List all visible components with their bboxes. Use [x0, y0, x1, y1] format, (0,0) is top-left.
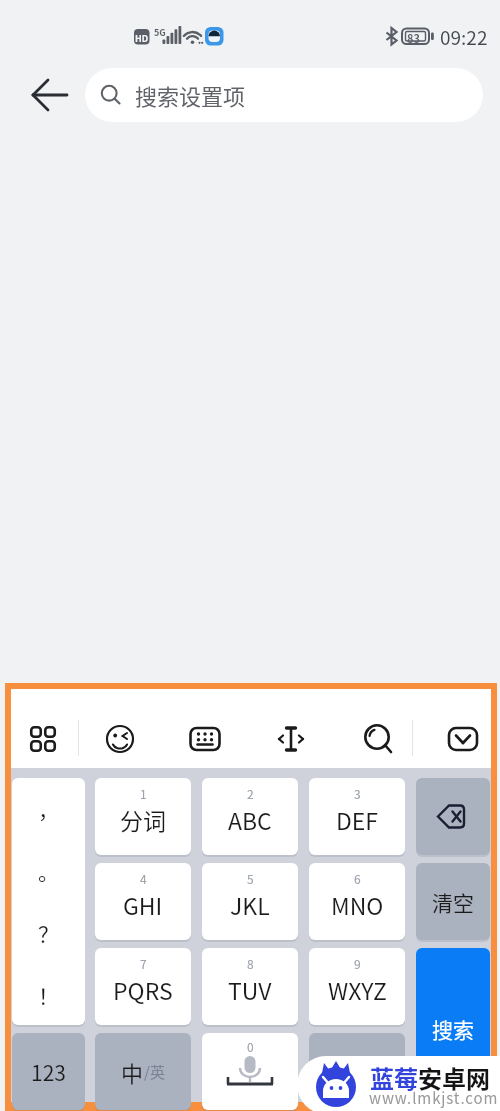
button[interactable]: 5 [202, 863, 298, 940]
staticText: 蓝莓 [370, 1060, 418, 1095]
staticText: 清空 [432, 887, 474, 917]
staticText: www.lmkjst.com [369, 1087, 499, 1109]
button[interactable]: Keyboard layouts [17, 713, 69, 765]
button[interactable]: Backspace [416, 778, 490, 855]
button[interactable]: 3 [309, 778, 405, 855]
button[interactable]: Back [26, 71, 74, 119]
staticText: 中 [121, 1056, 144, 1088]
button[interactable]: Punctuation [12, 778, 85, 1025]
button[interactable]: Space [202, 1033, 298, 1110]
staticText: DEF [336, 803, 379, 836]
button[interactable]: 8 [202, 948, 298, 1025]
staticText: 5 [247, 870, 254, 887]
staticText: 。 [38, 856, 59, 886]
staticText: 09:22 [440, 23, 488, 51]
staticText: 0 [247, 1038, 254, 1055]
staticText: 9 [354, 955, 361, 972]
staticText: 7 [140, 955, 147, 972]
button[interactable]: 中 [95, 1033, 191, 1110]
button[interactable]: 123 [12, 1033, 85, 1110]
staticText: 83 [407, 30, 420, 46]
button[interactable]: Numeric keypad [179, 713, 231, 765]
staticText: GHI [123, 888, 163, 921]
staticText: ， [38, 794, 59, 824]
staticText: 5G [154, 26, 166, 39]
button[interactable]: Hide keyboard [437, 713, 489, 765]
staticText: MNO [331, 888, 384, 921]
staticText: /英 [144, 1061, 165, 1083]
button[interactable]: Search [352, 713, 404, 765]
staticText: WXYZ [328, 973, 387, 1006]
button[interactable]: 清空 [416, 863, 490, 940]
button[interactable]: 搜索 [416, 948, 490, 1110]
button[interactable]: 7 [95, 948, 191, 1025]
staticText: PQRS [113, 973, 173, 1006]
button[interactable]: 2 [202, 778, 298, 855]
button[interactable]: 4 [95, 863, 191, 940]
staticText: ABC [228, 803, 272, 836]
staticText: ？ [38, 918, 59, 948]
staticText: 搜索设置项 [135, 79, 246, 111]
button[interactable]: Emoji [94, 713, 146, 765]
staticText: TUV [228, 973, 272, 1006]
staticText: 搜索 [432, 1014, 474, 1044]
staticText: 4 [140, 870, 147, 887]
staticText: 8 [247, 955, 254, 972]
button[interactable]: 9 [309, 948, 405, 1025]
staticText: 2 [247, 785, 254, 802]
staticText: 123 [31, 1057, 66, 1087]
staticText: 6 [354, 870, 361, 887]
staticText: ！ [38, 980, 59, 1010]
staticText: 3 [354, 785, 361, 802]
staticText: HD [135, 32, 149, 45]
button[interactable]: 搜索设置项 [85, 68, 483, 122]
button[interactable]: 1 [95, 778, 191, 855]
staticText: JKL [230, 888, 270, 921]
button[interactable]: Cursor control [265, 713, 317, 765]
staticText: 分词 [120, 803, 166, 836]
button[interactable]: Symbols [309, 1033, 405, 1110]
staticText: 1 [140, 785, 147, 802]
button[interactable]: 6 [309, 863, 405, 940]
staticText: 安卓网 [418, 1060, 490, 1095]
